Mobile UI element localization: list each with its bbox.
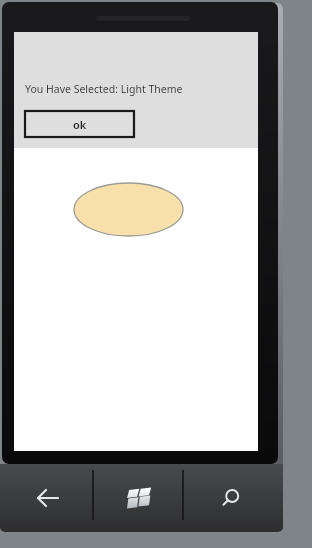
button[interactable]: Search: [183, 464, 283, 532]
button[interactable]: ok: [25, 111, 134, 137]
button[interactable]: Start: [93, 464, 183, 532]
button[interactable]: Back: [0, 464, 93, 532]
staticText: You Have Selected: Light Theme: [25, 82, 183, 96]
staticText: ok: [73, 117, 87, 132]
